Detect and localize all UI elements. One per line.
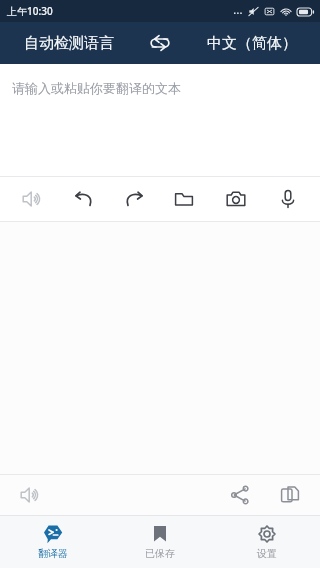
button[interactable]: 请输入或粘贴你要翻译的文本 [0,64,320,176]
staticText: 设置 [257,547,277,560]
button[interactable]: Camera translate [214,177,258,221]
button[interactable]: Voice input [266,177,310,221]
button[interactable]: 翻译器 [0,516,106,568]
button[interactable]: Undo [62,177,106,221]
staticText: 中文（简体） [207,34,297,53]
button[interactable]: Speak source text [10,177,54,221]
button[interactable]: Share [220,475,260,515]
button[interactable]: 设置 [213,516,320,568]
staticText: 自动检测语言 [24,34,114,53]
button[interactable]: Swap languages [137,22,183,64]
button[interactable]: 中文（简体） [183,22,320,64]
button[interactable]: Speak translation [10,475,50,515]
button[interactable]: Redo [112,177,156,221]
button[interactable]: Copy [270,475,310,515]
staticText: 请输入或粘贴你要翻译的文本 [12,80,181,96]
button[interactable]: Open document [162,177,206,221]
staticText: 上午10:30 [7,4,53,18]
button[interactable]: 已保存 [106,516,213,568]
staticText: 翻译器 [38,547,68,560]
button[interactable]: 自动检测语言 [0,22,137,64]
staticText: 已保存 [145,547,175,560]
